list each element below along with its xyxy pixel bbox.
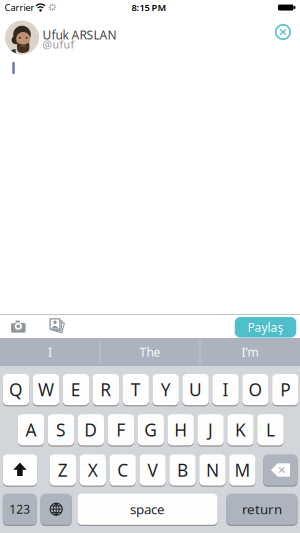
staticText: A xyxy=(25,418,36,441)
button[interactable]: Camera xyxy=(11,318,26,331)
button[interactable]: D xyxy=(78,413,104,446)
staticText: I xyxy=(48,344,52,360)
staticText: P xyxy=(280,378,290,401)
staticText: H xyxy=(174,418,187,441)
button[interactable]: Photos xyxy=(47,316,63,332)
button[interactable]: Next keyboard xyxy=(41,493,72,526)
staticText: Y xyxy=(161,378,171,401)
button[interactable]: I’m xyxy=(201,338,299,366)
button[interactable]: W xyxy=(33,373,59,406)
button[interactable]: T xyxy=(122,373,149,406)
staticText: S xyxy=(56,418,66,441)
button[interactable]: X xyxy=(79,453,106,487)
staticText: Paylaş xyxy=(247,319,283,335)
staticText: Carrier xyxy=(4,1,34,14)
button[interactable]: I xyxy=(212,373,239,406)
button[interactable]: Paylaş xyxy=(235,317,296,338)
button[interactable]: C xyxy=(109,453,136,487)
staticText: K xyxy=(235,418,246,441)
button[interactable]: L xyxy=(257,413,284,446)
button[interactable]: 123 xyxy=(3,493,37,526)
button[interactable]: K xyxy=(227,413,254,446)
button[interactable]: Shift xyxy=(3,453,37,487)
button[interactable]: A xyxy=(18,413,44,446)
staticText: return xyxy=(242,500,282,518)
staticText: J xyxy=(208,418,213,441)
button[interactable]: M xyxy=(229,453,256,487)
staticText: L xyxy=(266,418,275,441)
button[interactable]: J xyxy=(197,413,224,446)
button[interactable]: P xyxy=(272,373,299,406)
button[interactable]: return xyxy=(226,493,297,526)
staticText: G xyxy=(144,418,157,441)
staticText: W xyxy=(38,378,54,401)
button[interactable]: B xyxy=(169,453,196,487)
staticText: Ufuk ARSLAN xyxy=(42,27,116,43)
staticText: X xyxy=(88,458,98,481)
button[interactable]: Close xyxy=(275,24,291,40)
button[interactable]: V xyxy=(139,453,166,487)
button[interactable]: F xyxy=(108,413,134,446)
staticText: D xyxy=(84,418,97,441)
button[interactable]: G xyxy=(137,413,164,446)
staticText: M xyxy=(234,458,250,481)
button[interactable]: N xyxy=(199,453,226,487)
button[interactable]: S xyxy=(48,413,74,446)
staticText: U xyxy=(189,378,202,401)
button[interactable]: I xyxy=(1,338,99,366)
staticText: Q xyxy=(9,378,23,401)
button[interactable]: O xyxy=(242,373,269,406)
staticText: @ufuf xyxy=(42,37,74,51)
staticText: I xyxy=(222,378,228,401)
staticText: The xyxy=(139,344,160,360)
staticText: T xyxy=(131,378,141,401)
staticText: F xyxy=(116,418,125,441)
staticText: 8:15 PM xyxy=(131,1,166,14)
staticText: C xyxy=(117,458,128,481)
staticText: N xyxy=(206,458,219,481)
staticText: E xyxy=(71,378,81,401)
staticText: I’m xyxy=(241,344,258,360)
button[interactable]: Z xyxy=(50,453,76,487)
button[interactable]: H xyxy=(167,413,194,446)
button[interactable]: Delete xyxy=(263,453,297,487)
staticText: Z xyxy=(58,458,68,481)
button[interactable]: Y xyxy=(152,373,179,406)
staticText: space xyxy=(130,500,165,518)
button[interactable]: U xyxy=(182,373,209,406)
button[interactable]: R xyxy=(93,373,119,406)
button[interactable]: space xyxy=(77,493,218,526)
staticText: R xyxy=(100,378,111,401)
staticText: O xyxy=(248,378,262,401)
button[interactable]: E xyxy=(63,373,89,406)
staticText: B xyxy=(177,458,188,481)
button[interactable]: The xyxy=(101,338,199,366)
staticText: 123 xyxy=(9,501,30,517)
staticText: V xyxy=(148,458,158,481)
button[interactable]: Q xyxy=(3,373,29,406)
